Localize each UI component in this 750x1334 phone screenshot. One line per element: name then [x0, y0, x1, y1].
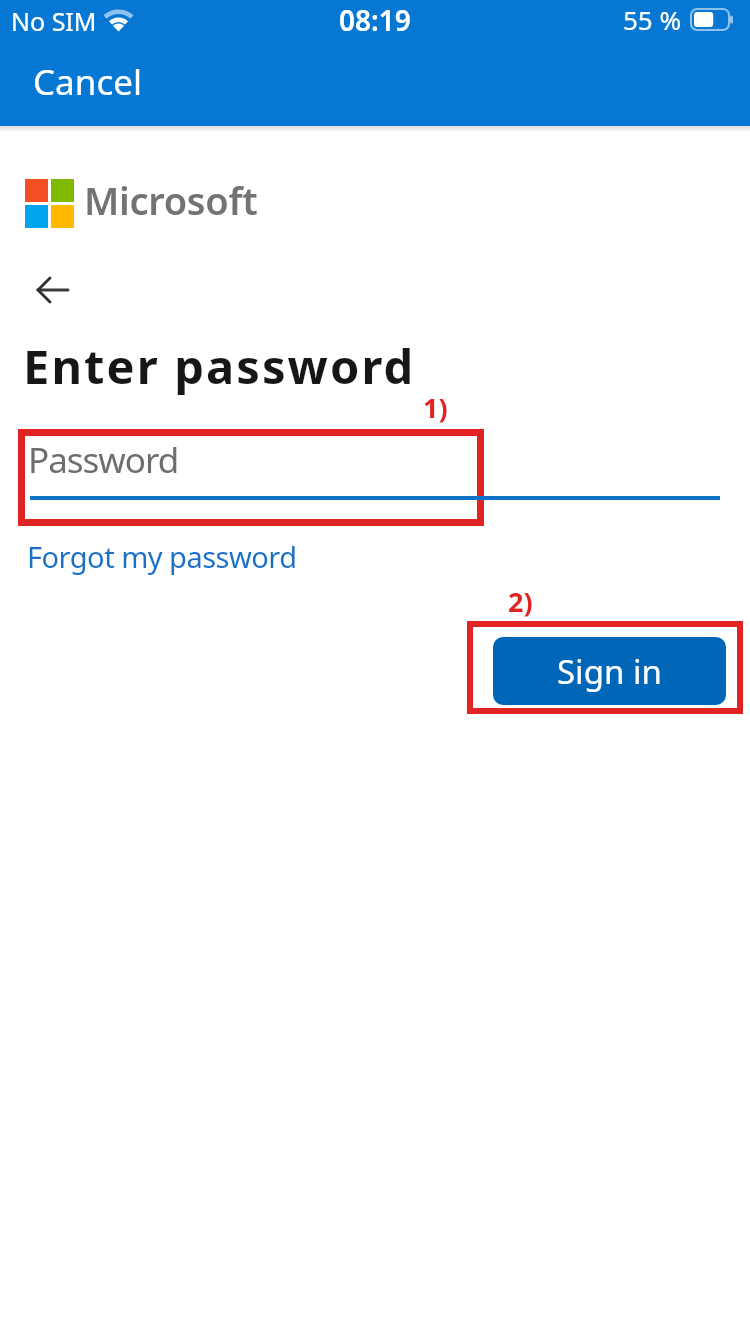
staticText: Forgot my password	[27, 537, 297, 576]
staticText: No SIM	[11, 4, 97, 38]
staticText: Microsoft	[84, 174, 258, 226]
button[interactable]: Cancel	[20, 52, 160, 112]
staticText: Cancel	[33, 58, 142, 106]
staticText: 1)	[423, 389, 448, 426]
staticText: Password	[28, 436, 179, 484]
button[interactable]: Sign in	[493, 637, 726, 705]
staticText: 55 %	[623, 2, 682, 37]
button[interactable]	[24, 268, 80, 312]
staticText: 08:19	[339, 1, 411, 39]
staticText: Sign in	[557, 649, 662, 694]
button[interactable]: Forgot my password	[27, 537, 297, 576]
staticText: Enter password	[23, 334, 416, 398]
button[interactable]: Password	[30, 440, 720, 502]
staticText: 2)	[508, 583, 533, 620]
